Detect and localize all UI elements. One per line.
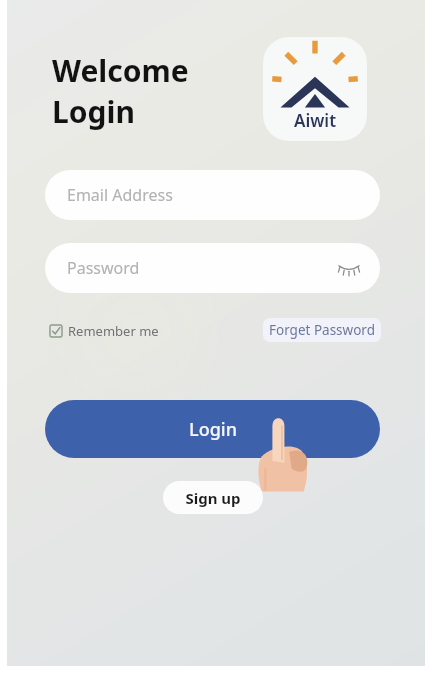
staticText: Remember me (68, 322, 159, 340)
button[interactable]: Remember me (48, 319, 161, 343)
button[interactable]: Show password (334, 253, 364, 283)
staticText: Login (189, 417, 237, 442)
button[interactable]: Aiwit logo (263, 37, 367, 141)
staticText: Password (67, 257, 140, 279)
button[interactable]: Sign up (163, 481, 263, 514)
button[interactable]: Forget Password (263, 318, 381, 342)
staticText: Login (52, 91, 135, 132)
button[interactable]: Login (45, 400, 380, 458)
staticText: Forget Password (269, 321, 375, 339)
staticText: Aiwit (294, 109, 337, 132)
button[interactable]: Password (45, 243, 380, 293)
staticText: Welcome (52, 50, 189, 91)
button[interactable]: Email Address (45, 170, 380, 220)
staticText: Sign up (185, 488, 241, 508)
staticText: Email Address (67, 184, 173, 206)
